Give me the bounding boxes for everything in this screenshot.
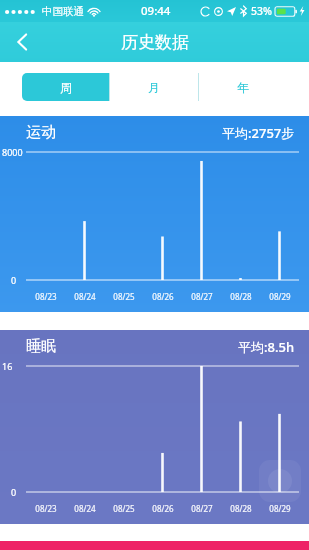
staticText: 中国联通 (42, 5, 84, 18)
staticText: 平均:8.5h (238, 338, 295, 356)
button[interactable]: 年 (199, 73, 287, 101)
staticText: 年 (237, 80, 249, 95)
staticText: 09:44 (141, 3, 171, 19)
staticText: 08/27 (191, 503, 213, 514)
staticText: 08/29 (269, 503, 291, 514)
staticText: 08/25 (113, 503, 135, 514)
staticText: 运动 (26, 123, 56, 142)
staticText: 08/29 (269, 291, 291, 302)
staticText: 历史数据 (121, 32, 189, 53)
staticText: 周 (60, 80, 72, 95)
staticText: 08/23 (35, 291, 57, 302)
staticText: 53% (251, 4, 272, 18)
button[interactable]: 运动 (0, 116, 309, 312)
staticText: 08/25 (113, 291, 135, 302)
staticText: 08/26 (152, 291, 174, 302)
staticText: 08/24 (74, 291, 96, 302)
button[interactable]: 周 (22, 73, 109, 101)
staticText: 08/23 (35, 503, 57, 514)
staticText: 08/26 (152, 503, 174, 514)
staticText: 08/24 (74, 503, 96, 514)
staticText: 0 (11, 486, 17, 498)
staticText: 睡眠 (26, 337, 56, 356)
staticText: 月 (148, 80, 160, 95)
staticText: 平均:2757步 (222, 124, 295, 142)
staticText: 08/28 (230, 291, 252, 302)
staticText: 8000 (2, 146, 23, 158)
button[interactable]: Back (0, 22, 44, 62)
staticText: 0 (11, 274, 17, 286)
staticText: 08/28 (230, 503, 252, 514)
staticText: 08/27 (191, 291, 213, 302)
button[interactable]: 月 (110, 73, 198, 101)
staticText: 16 (2, 360, 13, 372)
button[interactable]: 睡眠 (0, 330, 309, 524)
